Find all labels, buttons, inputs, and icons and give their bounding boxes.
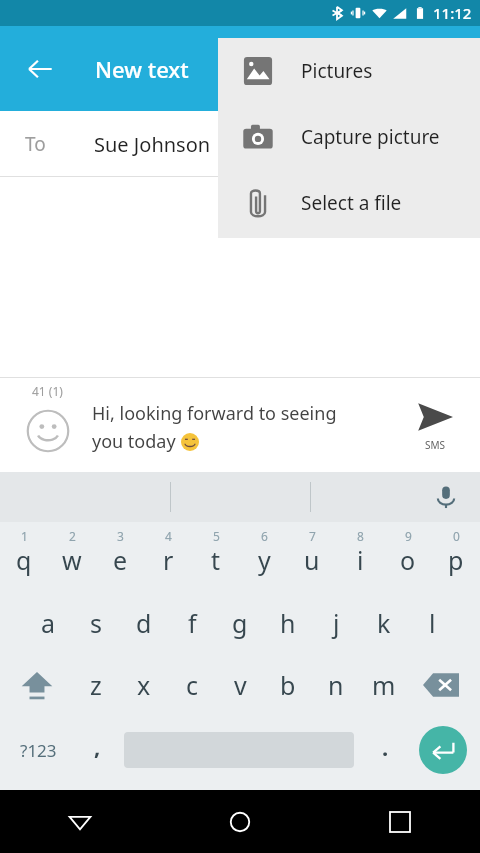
- staticText: 2: [69, 528, 76, 544]
- staticText: o: [400, 543, 416, 577]
- staticText: 41 (1): [32, 383, 63, 399]
- staticText: 6: [261, 528, 268, 544]
- staticText: c: [186, 668, 199, 702]
- button[interactable]: g: [216, 592, 264, 654]
- staticText: f: [188, 606, 197, 640]
- staticText: Hi, looking forward to seeing: [92, 401, 337, 426]
- button[interactable]: z: [72, 654, 120, 716]
- button[interactable]: 2: [48, 522, 96, 592]
- button[interactable]: ?123: [4, 716, 72, 784]
- button[interactable]: h: [264, 592, 312, 654]
- button[interactable]: f: [168, 592, 216, 654]
- button[interactable]: c: [168, 654, 216, 716]
- staticText: Capture picture: [301, 124, 440, 150]
- staticText: Select a file: [301, 190, 402, 216]
- staticText: 9: [405, 528, 412, 544]
- staticText: l: [429, 606, 436, 640]
- staticText: b: [280, 668, 296, 702]
- button[interactable]: 4: [144, 522, 192, 592]
- button[interactable]: 8: [336, 522, 384, 592]
- button[interactable]: j: [312, 592, 360, 654]
- staticText: w: [62, 543, 82, 577]
- staticText: d: [136, 606, 152, 640]
- button[interactable]: Pictures: [218, 38, 480, 104]
- button[interactable]: d: [120, 592, 168, 654]
- button[interactable]: Capture picture: [218, 104, 480, 170]
- staticText: u: [304, 543, 320, 577]
- staticText: 3: [117, 528, 124, 544]
- staticText: r: [163, 543, 174, 577]
- staticText: v: [234, 668, 247, 702]
- staticText: ?123: [20, 739, 57, 762]
- staticText: 1: [21, 528, 28, 544]
- button[interactable]: Enter: [419, 726, 467, 774]
- staticText: g: [232, 606, 248, 640]
- staticText: ,: [94, 731, 101, 761]
- staticText: j: [333, 606, 340, 640]
- staticText: a: [41, 606, 56, 640]
- staticText: t: [211, 543, 221, 577]
- staticText: 11:12: [433, 3, 472, 23]
- staticText: 8: [357, 528, 364, 544]
- staticText: y: [258, 543, 271, 577]
- button[interactable]: 0: [432, 522, 480, 592]
- staticText: i: [357, 543, 364, 577]
- staticText: n: [328, 668, 344, 702]
- button[interactable]: .: [364, 716, 406, 784]
- staticText: x: [137, 668, 151, 702]
- staticText: 4: [165, 528, 172, 544]
- button[interactable]: Home: [160, 790, 320, 853]
- button[interactable]: Select a file: [218, 170, 480, 236]
- button[interactable]: b: [264, 654, 312, 716]
- button[interactable]: s: [72, 592, 120, 654]
- button[interactable]: Send SMS: [404, 394, 466, 456]
- staticText: .: [382, 732, 389, 762]
- staticText: To: [25, 131, 46, 157]
- button[interactable]: x: [120, 654, 168, 716]
- staticText: z: [90, 668, 102, 702]
- staticText: 7: [309, 528, 316, 544]
- button[interactable]: 5: [192, 522, 240, 592]
- staticText: h: [280, 606, 296, 640]
- button[interactable]: 1: [0, 522, 48, 592]
- staticText: q: [16, 543, 32, 577]
- staticText: m: [372, 668, 396, 702]
- button[interactable]: k: [360, 592, 408, 654]
- button[interactable]: l: [408, 592, 456, 654]
- button[interactable]: ,: [76, 716, 118, 784]
- button[interactable]: Emoji: [22, 405, 74, 457]
- button[interactable]: Back: [14, 43, 66, 95]
- button[interactable]: 3: [96, 522, 144, 592]
- button[interactable]: 7: [288, 522, 336, 592]
- button[interactable]: Recents: [320, 790, 480, 853]
- staticText: you today: [92, 429, 181, 454]
- staticText: p: [448, 543, 464, 577]
- staticText: Pictures: [301, 58, 373, 84]
- button[interactable]: Backspace: [412, 654, 470, 716]
- button[interactable]: v: [216, 654, 264, 716]
- button[interactable]: a: [24, 592, 72, 654]
- staticText: s: [90, 606, 102, 640]
- button[interactable]: Shift: [8, 654, 66, 716]
- staticText: 0: [453, 528, 460, 544]
- staticText: New text: [95, 54, 189, 84]
- staticText: SMS: [425, 438, 446, 452]
- staticText: e: [113, 543, 128, 577]
- button[interactable]: 6: [240, 522, 288, 592]
- button[interactable]: Back: [0, 790, 160, 853]
- button[interactable]: Voice input: [424, 475, 468, 519]
- button[interactable]: n: [312, 654, 360, 716]
- button[interactable]: m: [360, 654, 408, 716]
- button[interactable]: 9: [384, 522, 432, 592]
- staticText: Sue Johnson: [94, 131, 211, 158]
- staticText: 5: [213, 528, 220, 544]
- staticText: k: [377, 606, 391, 640]
